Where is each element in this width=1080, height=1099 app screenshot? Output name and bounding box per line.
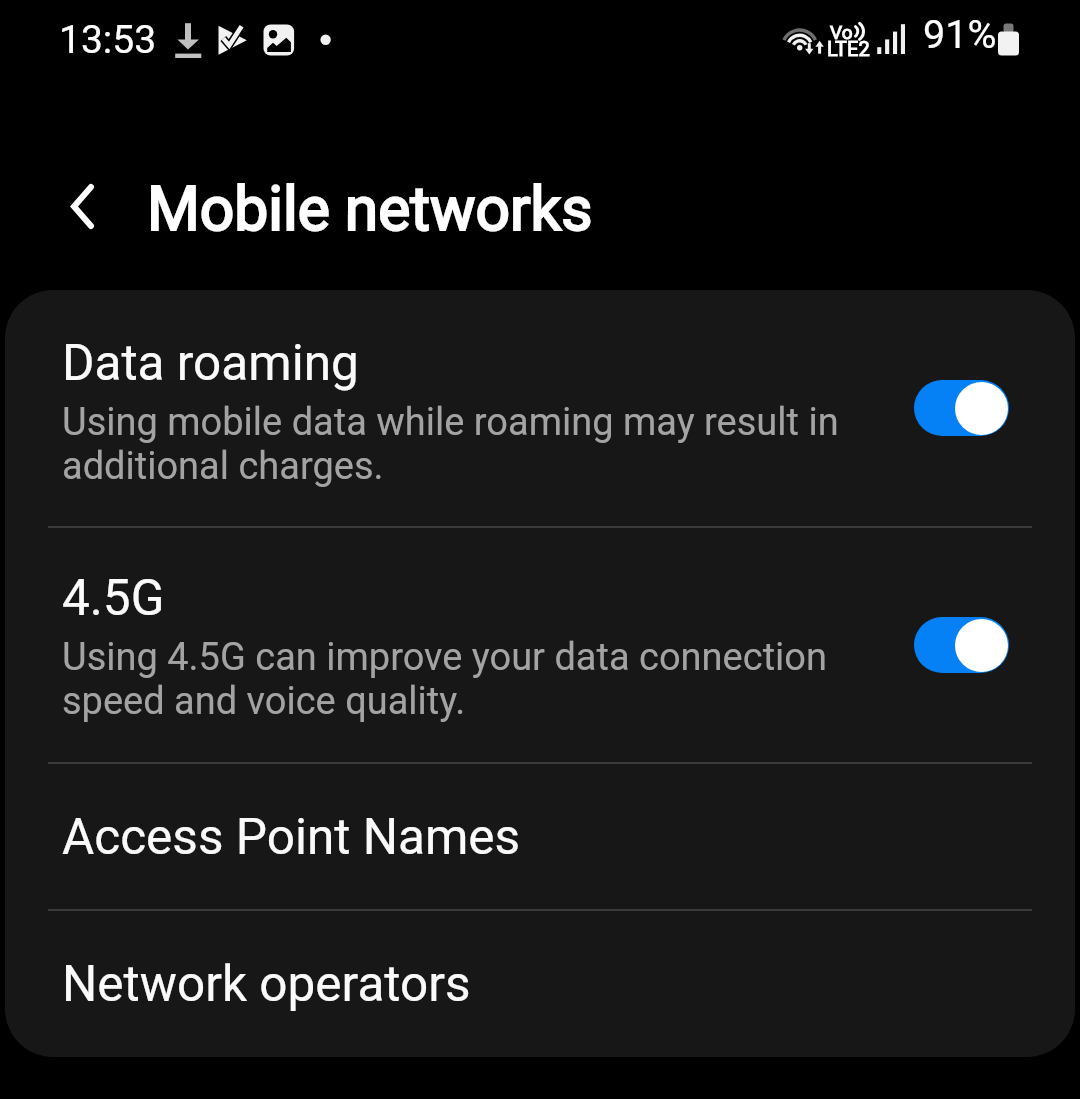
staticText: LTE2	[827, 37, 870, 60]
button[interactable]: 4.5G	[5, 528, 1075, 762]
staticText: 4.5G	[62, 575, 165, 625]
staticText: Access Point Names	[62, 814, 521, 864]
button[interactable]: Toggle switch, on	[914, 380, 1009, 436]
button[interactable]: Network operators	[5, 911, 1075, 1057]
button[interactable]: Access Point Names	[5, 764, 1075, 909]
button[interactable]: Data roaming	[5, 290, 1075, 526]
staticText: Mobile networks	[147, 182, 593, 243]
staticText: 91%	[923, 16, 997, 56]
staticText: Network operators	[62, 961, 471, 1011]
button[interactable]: Toggle switch, on	[914, 617, 1009, 673]
staticText: Using 4.5G can improve your data connect…	[62, 635, 895, 723]
staticText: Data roaming	[62, 340, 359, 390]
button[interactable]: Navigate up	[33, 158, 129, 254]
staticText: Vo	[830, 21, 853, 43]
staticText: 13:53	[59, 17, 157, 63]
staticText: Using mobile data while roaming may resu…	[62, 400, 895, 488]
